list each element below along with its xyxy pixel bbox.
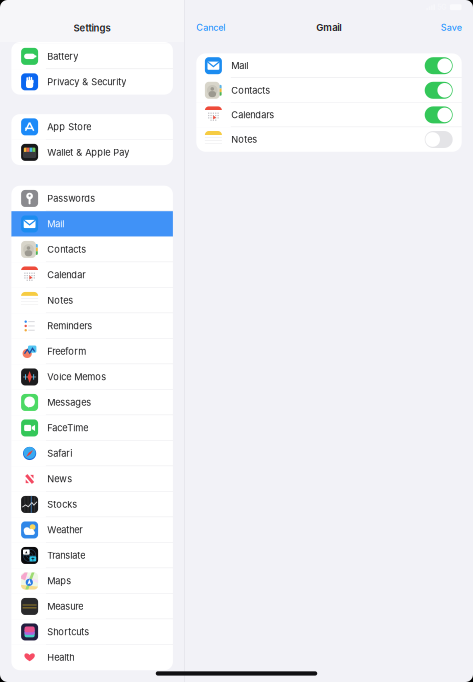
- staticText: Reminders: [47, 321, 92, 331]
- staticText: Privacy & Security: [47, 76, 126, 87]
- button[interactable]: Voice Memos: [11, 364, 173, 390]
- button[interactable]: On: [425, 82, 453, 99]
- staticText: Contacts: [47, 244, 86, 255]
- button[interactable]: Passwords: [11, 186, 173, 211]
- staticText: Measure: [47, 601, 83, 612]
- button[interactable]: On: [425, 106, 453, 123]
- button[interactable]: Off: [425, 131, 453, 148]
- button[interactable]: Measure: [11, 594, 173, 619]
- button[interactable]: Contacts: [11, 237, 173, 262]
- staticText: Mail: [47, 219, 64, 229]
- staticText: FaceTime: [47, 423, 88, 433]
- staticText: Notes: [47, 295, 73, 306]
- button[interactable]: Battery: [11, 44, 173, 69]
- button[interactable]: Calendars: [196, 103, 462, 127]
- button[interactable]: Contacts: [196, 78, 462, 103]
- staticText: Maps: [47, 576, 71, 586]
- staticText: News: [47, 474, 72, 484]
- staticText: Calendar: [47, 270, 85, 280]
- button[interactable]: Safari: [11, 441, 173, 466]
- staticText: Settings: [73, 22, 110, 34]
- button[interactable]: Translate: [11, 543, 173, 568]
- button[interactable]: Freeform: [11, 339, 173, 364]
- staticText: Passwords: [47, 193, 95, 204]
- button[interactable]: App Store: [11, 114, 173, 140]
- staticText: Cancel: [196, 22, 225, 33]
- button[interactable]: Health: [11, 645, 173, 670]
- staticText: Calendars: [231, 109, 274, 120]
- button[interactable]: Privacy & Security: [11, 69, 173, 95]
- button[interactable]: Messages: [11, 390, 173, 415]
- staticText: Safari: [47, 448, 72, 459]
- staticText: Weather: [47, 525, 82, 535]
- staticText: Messages: [47, 397, 91, 408]
- staticText: Wallet & Apple Pay: [47, 147, 129, 158]
- button[interactable]: Maps: [11, 568, 173, 594]
- button[interactable]: Save: [441, 5, 462, 40]
- staticText: App Store: [47, 121, 91, 132]
- button[interactable]: FaceTime: [11, 415, 173, 441]
- button[interactable]: News: [11, 466, 173, 492]
- staticText: Gmail: [316, 22, 341, 33]
- button[interactable]: Wallet & Apple Pay: [11, 140, 173, 165]
- staticText: Save: [441, 22, 462, 33]
- button[interactable]: Mail: [196, 53, 462, 78]
- staticText: Stocks: [47, 499, 77, 510]
- staticText: Health: [47, 652, 74, 663]
- button[interactable]: Stocks: [11, 492, 173, 517]
- button[interactable]: Shortcuts: [11, 619, 173, 645]
- button[interactable]: Cancel: [196, 5, 225, 40]
- button[interactable]: Reminders: [11, 313, 173, 339]
- staticText: Contacts: [231, 85, 270, 96]
- staticText: Shortcuts: [47, 627, 89, 637]
- staticText: Mail: [231, 60, 248, 71]
- staticText: Freeform: [47, 346, 86, 357]
- button[interactable]: Weather: [11, 517, 173, 543]
- staticText: Battery: [47, 51, 78, 62]
- staticText: Notes: [231, 134, 257, 145]
- button[interactable]: Mail: [11, 211, 173, 237]
- button[interactable]: Notes: [11, 288, 173, 313]
- staticText: Voice Memos: [47, 372, 106, 382]
- staticText: Translate: [47, 550, 85, 561]
- button[interactable]: Notes: [196, 127, 462, 152]
- button[interactable]: Calendar: [11, 262, 173, 288]
- button[interactable]: On: [425, 57, 453, 74]
